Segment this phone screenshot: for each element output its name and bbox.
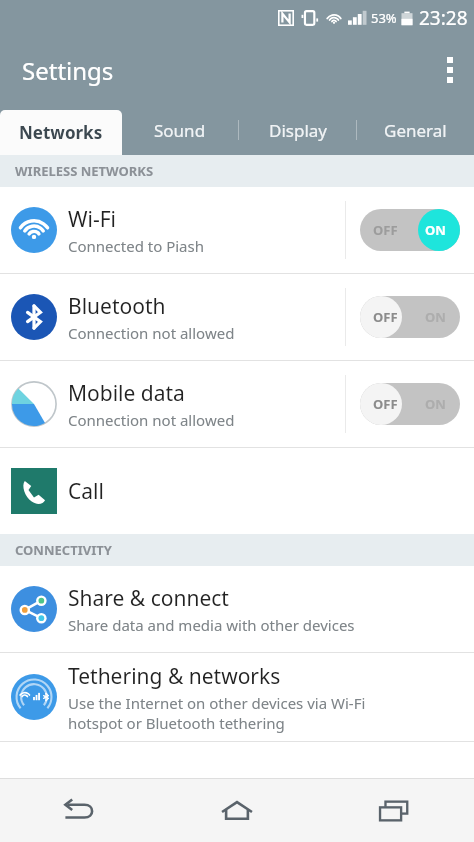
button[interactable]: Sound xyxy=(122,105,238,155)
staticText: Networks xyxy=(19,121,103,144)
button[interactable]: Mobile data switch xyxy=(346,361,474,447)
staticText: ON xyxy=(425,395,446,413)
button[interactable]: Mobile data xyxy=(0,361,474,447)
staticText: Display xyxy=(269,119,327,142)
staticText: ON xyxy=(425,308,446,326)
button[interactable]: More options xyxy=(426,46,474,94)
staticText: 53% xyxy=(371,9,397,27)
staticText: Share data and media with other devices xyxy=(68,615,355,635)
staticText: Connection not allowed xyxy=(68,323,235,343)
staticText: Connected to Piash xyxy=(68,236,204,256)
button[interactable]: Recent apps xyxy=(316,779,474,842)
button[interactable]: Tethering & networks xyxy=(0,653,474,741)
button[interactable]: Bluetooth switch xyxy=(346,274,474,360)
staticText: ON xyxy=(425,221,446,239)
button[interactable]: Home xyxy=(158,779,316,842)
button[interactable]: Networks xyxy=(0,110,122,155)
staticText: Settings xyxy=(22,54,114,87)
staticText: OFF xyxy=(373,308,398,326)
button[interactable]: Back xyxy=(0,779,158,842)
staticText: Mobile data xyxy=(68,379,185,408)
staticText: OFF xyxy=(373,221,398,239)
staticText: Call xyxy=(68,477,104,506)
staticText: CONNECTIVITY xyxy=(15,541,112,559)
button[interactable]: Share & connect xyxy=(0,566,474,652)
staticText: Share & connect xyxy=(68,584,229,613)
staticText: 23:28 xyxy=(419,5,468,31)
staticText: Tethering & networks xyxy=(68,662,281,691)
button[interactable]: Wi-Fi xyxy=(0,187,474,273)
staticText: Connection not allowed xyxy=(68,410,235,430)
button[interactable]: Bluetooth xyxy=(0,274,474,360)
staticText: Use the Internet on other devices via Wi… xyxy=(68,693,366,733)
staticText: Wi-Fi xyxy=(68,205,117,234)
button[interactable]: Call xyxy=(0,448,474,534)
button[interactable]: Display xyxy=(239,105,356,155)
staticText: WIRELESS NETWORKS xyxy=(15,162,154,180)
staticText: OFF xyxy=(373,395,398,413)
button[interactable]: General xyxy=(357,105,474,155)
staticText: Bluetooth xyxy=(68,292,166,321)
staticText: Sound xyxy=(154,119,206,142)
staticText: General xyxy=(384,119,447,142)
button[interactable]: Wi-Fi switch xyxy=(346,187,474,273)
